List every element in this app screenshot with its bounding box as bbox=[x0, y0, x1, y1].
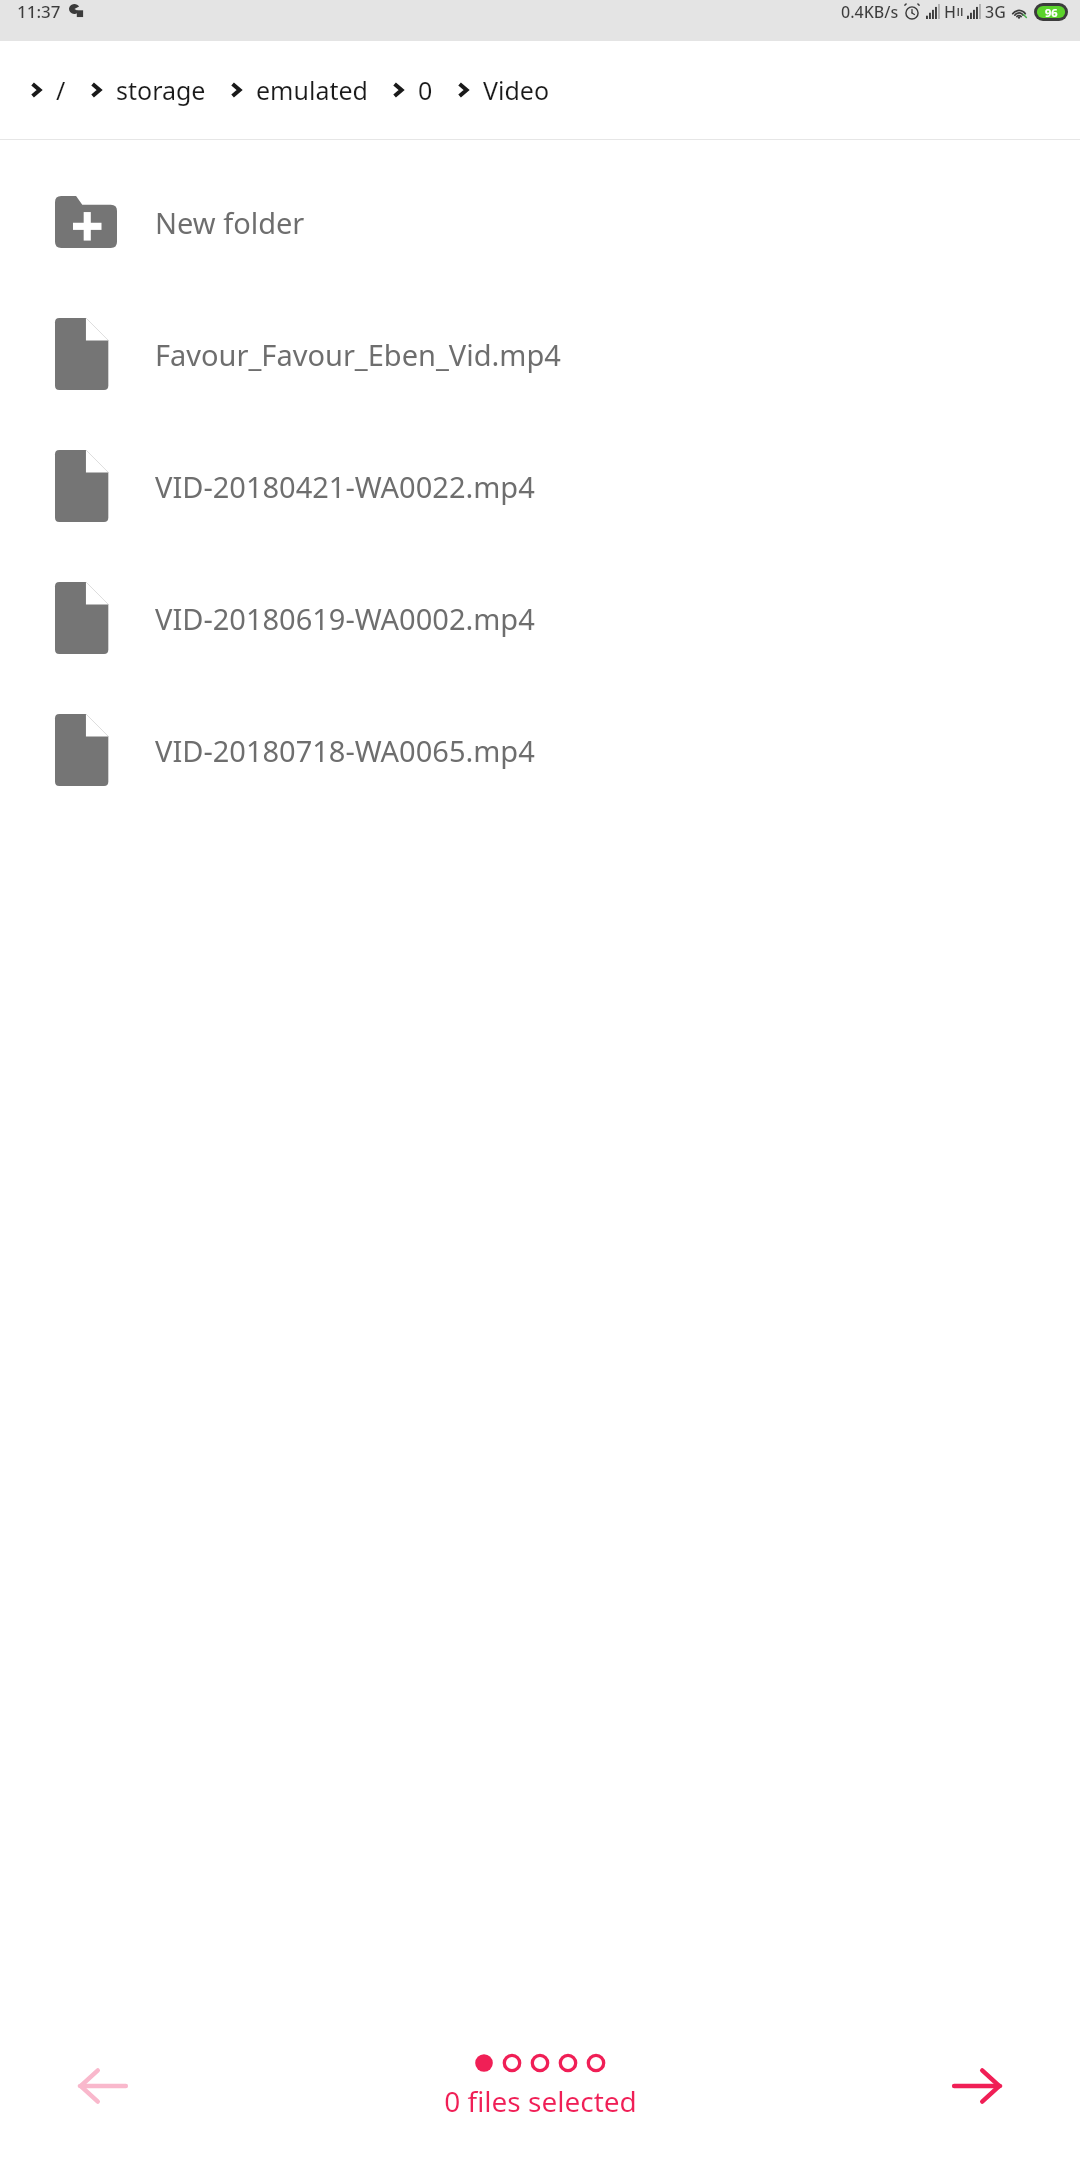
staticText: 0 files selected bbox=[444, 2082, 637, 2120]
staticText: H bbox=[944, 1, 956, 23]
staticText: New folder bbox=[155, 203, 305, 242]
staticText: / bbox=[56, 73, 66, 107]
button[interactable]: storage bbox=[76, 65, 216, 115]
button[interactable]: VID-20180421-WA0022.mp4 bbox=[0, 420, 1080, 552]
staticText: Favour_Favour_Eben_Vid.mp4 bbox=[155, 335, 561, 374]
staticText: 3G bbox=[985, 1, 1006, 23]
staticText: VID-20180619-WA0002.mp4 bbox=[155, 599, 535, 638]
button[interactable]: VID-20180619-WA0002.mp4 bbox=[0, 552, 1080, 684]
button[interactable]: / bbox=[16, 65, 76, 115]
staticText: Video bbox=[483, 73, 550, 107]
button[interactable]: 0 bbox=[378, 65, 443, 115]
button[interactable]: VID-20180718-WA0065.mp4 bbox=[0, 684, 1080, 816]
button[interactable]: emulated bbox=[216, 65, 378, 115]
staticText: storage bbox=[116, 73, 206, 107]
staticText: emulated bbox=[256, 73, 368, 107]
staticText: 11:37 bbox=[17, 0, 61, 23]
button[interactable]: Favour_Favour_Eben_Vid.mp4 bbox=[0, 288, 1080, 420]
button[interactable]: Video bbox=[443, 65, 560, 115]
staticText: 96 bbox=[1045, 5, 1058, 20]
staticText: 0 bbox=[418, 73, 433, 107]
button[interactable]: New folder bbox=[0, 156, 1080, 288]
button[interactable]: Previous bbox=[18, 2012, 188, 2160]
staticText: 0.4KB/s bbox=[841, 1, 899, 23]
button[interactable]: Next bbox=[892, 2012, 1062, 2160]
staticText: VID-20180421-WA0022.mp4 bbox=[155, 467, 535, 506]
staticText: VID-20180718-WA0065.mp4 bbox=[155, 731, 535, 770]
